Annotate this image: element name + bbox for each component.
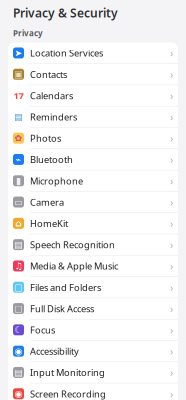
button[interactable]: 17: [8, 85, 178, 106]
staticText: ◉: [14, 346, 22, 356]
staticText: ›: [170, 365, 173, 380]
staticText: Accessibility: [30, 345, 79, 357]
button[interactable]: ⌁: [8, 149, 178, 170]
button[interactable]: ▮: [8, 170, 178, 192]
button[interactable]: ✿: [8, 128, 178, 149]
staticText: Input Monitoring: [30, 366, 105, 379]
staticText: ›: [170, 238, 173, 252]
staticText: ▣: [14, 69, 23, 80]
staticText: ›: [170, 344, 173, 358]
button[interactable]: ▤: [8, 106, 178, 128]
staticText: ›: [170, 174, 173, 188]
staticText: Media & Apple Music: [30, 260, 118, 272]
staticText: HomeKit: [30, 217, 68, 230]
staticText: ›: [170, 301, 173, 316]
staticText: Privacy: [13, 28, 43, 38]
staticText: ›: [170, 152, 173, 167]
staticText: ♫: [14, 261, 22, 271]
staticText: ›: [170, 131, 173, 145]
button[interactable]: ▣: [8, 64, 178, 85]
staticText: ›: [170, 280, 173, 294]
staticText: Calendars: [30, 89, 73, 102]
staticText: Bluetooth: [30, 153, 73, 166]
staticText: ›: [170, 259, 173, 273]
staticText: Files and Folders: [30, 281, 101, 293]
staticText: ◉: [14, 388, 22, 399]
button[interactable]: ⌂: [8, 213, 178, 234]
staticText: ▤: [14, 112, 23, 122]
staticText: Speech Recognition: [30, 238, 115, 251]
staticText: Full Disk Access: [30, 302, 94, 315]
staticText: Reminders: [30, 111, 77, 123]
staticText: ▮: [16, 175, 21, 186]
staticText: ➤: [14, 48, 22, 58]
staticText: Focus: [30, 324, 55, 336]
staticText: ▤: [14, 239, 23, 250]
button[interactable]: ▤: [8, 234, 178, 256]
button[interactable]: ▢: [8, 277, 178, 298]
staticText: ✿: [14, 133, 22, 143]
button[interactable]: ▭: [8, 192, 178, 213]
staticText: ›: [170, 195, 173, 209]
staticText: ›: [170, 67, 173, 81]
button[interactable]: ▤: [8, 362, 178, 383]
button[interactable]: ➤: [8, 43, 178, 64]
button[interactable]: ◉: [8, 383, 178, 400]
button[interactable]: ◉: [8, 341, 178, 362]
staticText: ☾: [14, 325, 22, 335]
staticText: 17: [13, 89, 23, 102]
staticText: ›: [170, 323, 173, 337]
staticText: ⌂: [15, 218, 22, 229]
staticText: Location Services: [30, 47, 103, 59]
staticText: Photos: [30, 132, 61, 144]
staticText: ›: [170, 387, 173, 400]
staticText: Screen Recording: [30, 388, 106, 400]
staticText: ›: [170, 110, 173, 124]
staticText: ▢: [14, 303, 23, 314]
staticText: Privacy & Security: [13, 5, 118, 21]
button[interactable]: ▢: [8, 298, 178, 319]
staticText: ▭: [14, 197, 23, 207]
button[interactable]: ♫: [8, 256, 178, 277]
staticText: Contacts: [30, 68, 67, 80]
staticText: Camera: [30, 196, 64, 208]
staticText: ›: [170, 88, 173, 103]
staticText: ▢: [14, 282, 23, 293]
staticText: ⌁: [15, 154, 21, 165]
staticText: ›: [170, 216, 173, 230]
button[interactable]: ☾: [8, 319, 178, 341]
staticText: ▤: [14, 367, 23, 378]
staticText: ›: [170, 46, 173, 60]
staticText: Microphone: [30, 175, 83, 187]
